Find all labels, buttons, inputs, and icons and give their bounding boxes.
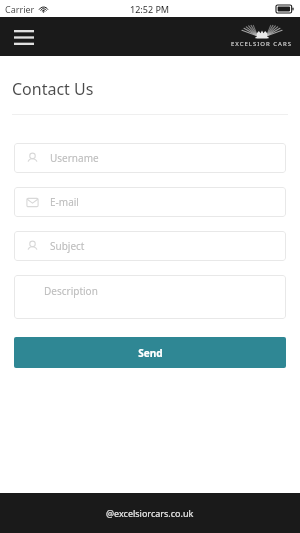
staticText: Carrier bbox=[5, 3, 35, 15]
staticText: Description bbox=[44, 284, 98, 298]
staticText: E-mail bbox=[50, 195, 79, 209]
staticText: Contact Us bbox=[12, 78, 94, 100]
staticText: 12:52 PM bbox=[130, 3, 170, 15]
button[interactable]: Subject bbox=[14, 231, 286, 261]
button[interactable]: E-mail bbox=[14, 187, 286, 217]
staticText: Username bbox=[50, 151, 99, 165]
button[interactable]: Send bbox=[14, 337, 286, 368]
button[interactable]: Open navigation menu bbox=[10, 23, 38, 51]
button[interactable]: Username bbox=[14, 143, 286, 173]
button[interactable]: @excelsiorcars.co.uk bbox=[0, 493, 300, 533]
button[interactable]: Excelsior Cars home bbox=[231, 26, 292, 48]
staticText: Send bbox=[138, 346, 163, 360]
staticText: EXCELSIOR CARS bbox=[231, 40, 292, 48]
staticText: @excelsiorcars.co.uk bbox=[106, 507, 194, 519]
staticText: Subject bbox=[50, 239, 85, 253]
button[interactable]: Description bbox=[14, 275, 286, 319]
